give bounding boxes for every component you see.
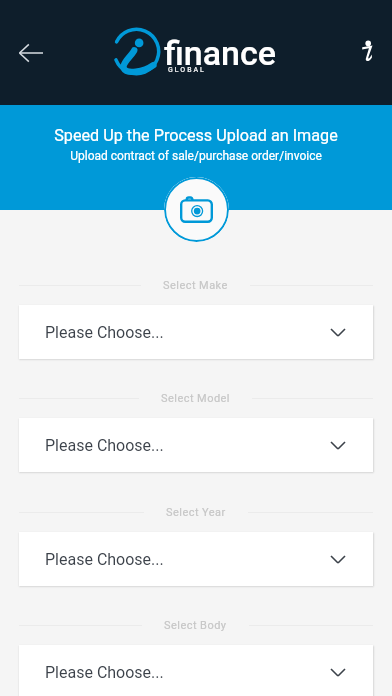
staticText: Please Choose...	[45, 663, 164, 682]
staticText: Select Model	[161, 392, 230, 405]
button[interactable]: Please Choose...	[19, 305, 373, 359]
staticText: Please Choose...	[45, 436, 164, 455]
button[interactable]: Please Choose...	[19, 645, 373, 696]
staticText: Select Year	[166, 506, 226, 519]
button[interactable]: Please Choose...	[19, 418, 373, 472]
button[interactable]: Back	[7, 29, 55, 77]
staticText: GLOBAL	[168, 66, 206, 74]
button[interactable]: Information	[345, 29, 389, 73]
staticText: finance	[164, 33, 277, 73]
button[interactable]: Please Choose...	[19, 532, 373, 586]
button[interactable]: Upload an image	[164, 177, 229, 242]
staticText: Select Make	[163, 279, 228, 292]
staticText: Upload contract of sale/purchase order/i…	[70, 149, 322, 163]
staticText: Speed Up the Process Upload an Image	[54, 126, 338, 145]
staticText: Select Body	[164, 619, 227, 632]
staticText: Please Choose...	[45, 323, 164, 342]
staticText: Please Choose...	[45, 550, 164, 569]
